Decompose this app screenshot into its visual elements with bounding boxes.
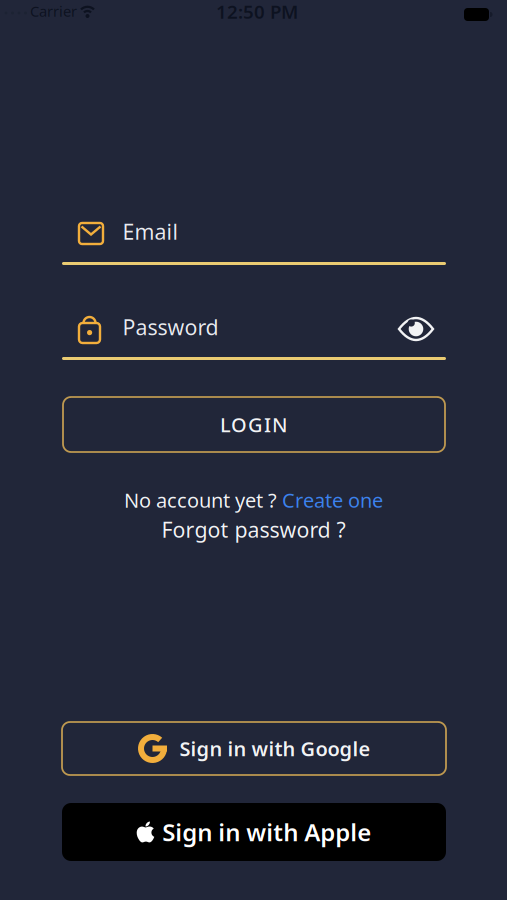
- staticText: No account yet ?: [124, 487, 277, 513]
- staticText: Forgot password ?: [161, 515, 345, 544]
- staticText: Carrier: [30, 1, 77, 21]
- staticText: 12:50 PM: [216, 0, 298, 24]
- button[interactable]: Create one: [282, 487, 383, 513]
- staticText: Sign in with Google: [179, 735, 370, 762]
- staticText: LOGIN: [220, 411, 288, 438]
- staticText: Email: [122, 217, 178, 246]
- button[interactable]: Forgot password ?: [161, 515, 345, 544]
- button[interactable]: Show password: [394, 311, 438, 347]
- button[interactable]: LOGIN: [63, 397, 445, 452]
- staticText: Create one: [282, 487, 383, 513]
- button[interactable]: Sign in with Apple: [62, 803, 446, 861]
- staticText: Sign in with Apple: [162, 816, 371, 848]
- staticText: Password: [122, 313, 218, 341]
- button[interactable]: Sign in with Google: [62, 722, 446, 775]
